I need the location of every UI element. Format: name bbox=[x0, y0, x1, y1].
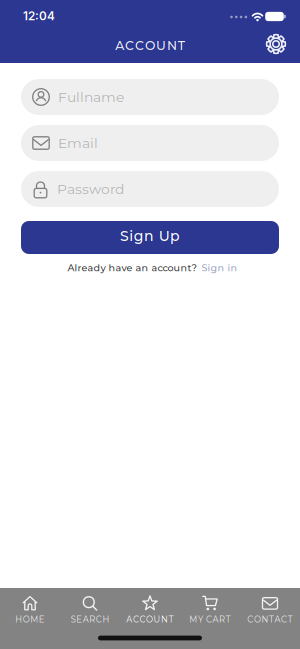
staticText: p bbox=[170, 227, 180, 245]
staticText: A bbox=[126, 614, 132, 625]
staticText: n bbox=[144, 227, 154, 245]
staticText: N bbox=[161, 614, 168, 625]
staticText: A bbox=[83, 614, 89, 625]
staticText: E bbox=[39, 614, 45, 625]
staticText: R bbox=[219, 614, 225, 625]
staticText: T bbox=[288, 614, 293, 625]
staticText: N bbox=[261, 614, 268, 625]
staticText: C bbox=[281, 614, 287, 625]
staticText: S bbox=[120, 227, 129, 245]
staticText: O bbox=[254, 614, 261, 625]
staticText: O bbox=[145, 38, 155, 53]
staticText: C bbox=[135, 38, 144, 53]
button[interactable]: Password bbox=[21, 171, 279, 207]
staticText: 12:04 bbox=[23, 9, 55, 23]
button[interactable]: A bbox=[120, 588, 180, 649]
button[interactable]: Fullname bbox=[21, 79, 279, 115]
staticText: N bbox=[167, 38, 177, 53]
staticText: Email bbox=[58, 134, 98, 151]
staticText: O bbox=[146, 614, 153, 625]
staticText: Y bbox=[198, 614, 203, 625]
button[interactable]: M bbox=[180, 588, 240, 649]
staticText: R bbox=[89, 614, 95, 625]
staticText: T bbox=[169, 614, 174, 625]
staticText: C bbox=[139, 614, 145, 625]
staticText: A bbox=[115, 38, 124, 53]
staticText: S bbox=[71, 614, 76, 625]
button[interactable]: S bbox=[60, 588, 120, 649]
staticText: T bbox=[269, 614, 274, 625]
staticText: T bbox=[178, 38, 185, 53]
staticText: A bbox=[275, 614, 281, 625]
button[interactable]: H bbox=[0, 588, 60, 649]
staticText: E bbox=[76, 614, 82, 625]
staticText: C bbox=[206, 614, 212, 625]
staticText: Already have an account? bbox=[67, 262, 197, 274]
staticText: U bbox=[156, 38, 166, 53]
button[interactable]: Sign in bbox=[201, 262, 237, 274]
button[interactable]: S bbox=[21, 221, 279, 254]
staticText: A bbox=[213, 614, 219, 625]
button[interactable] bbox=[263, 31, 289, 57]
staticText: Fullname bbox=[58, 88, 124, 105]
staticText: C bbox=[125, 38, 134, 53]
staticText: H bbox=[102, 614, 109, 625]
staticText: O bbox=[23, 614, 30, 625]
staticText: Sign in bbox=[201, 262, 237, 274]
staticText: U bbox=[153, 614, 160, 625]
staticText: Password bbox=[57, 180, 124, 197]
staticText: T bbox=[226, 614, 231, 625]
staticText: i bbox=[129, 227, 133, 245]
staticText: M bbox=[189, 614, 197, 625]
staticText: C bbox=[96, 614, 102, 625]
staticText: H bbox=[15, 614, 22, 625]
button[interactable]: Email bbox=[21, 125, 279, 161]
staticText: C bbox=[247, 614, 253, 625]
staticText: C bbox=[133, 614, 139, 625]
staticText: M bbox=[30, 614, 38, 625]
staticText: g bbox=[134, 227, 144, 245]
button[interactable]: C bbox=[240, 588, 300, 649]
staticText: U bbox=[159, 227, 170, 245]
staticText bbox=[203, 614, 205, 625]
